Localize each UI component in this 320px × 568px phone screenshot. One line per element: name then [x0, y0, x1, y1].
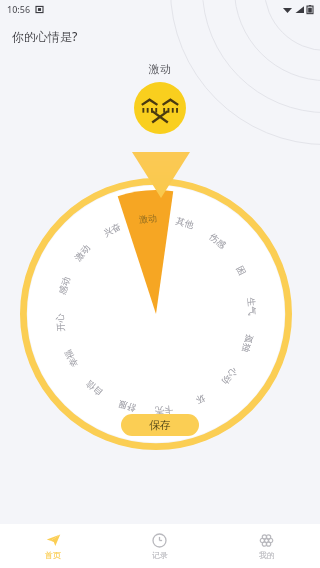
staticText: 坏 — [194, 392, 207, 406]
staticText: 激动 — [139, 212, 157, 225]
staticText: 你的心情是? — [12, 28, 78, 44]
button[interactable]: 心动 — [220, 366, 240, 387]
staticText: 困 — [234, 264, 248, 277]
staticText: 我的 — [259, 550, 275, 560]
button[interactable]: 记录 — [106, 524, 213, 568]
button[interactable]: 兴奋 — [101, 220, 122, 239]
button[interactable]: 感动 — [56, 275, 72, 296]
button[interactable]: 激动 — [139, 212, 157, 225]
staticText: 10:56 — [7, 3, 31, 15]
staticText: 生气 — [246, 297, 258, 316]
button[interactable]: 孤独 — [240, 333, 256, 354]
button[interactable]: 首页 — [0, 524, 106, 568]
staticText: 伤感 — [208, 230, 228, 250]
staticText: 其他 — [175, 214, 195, 230]
button[interactable]: 困 — [234, 264, 248, 277]
button[interactable]: 伤感 — [208, 230, 228, 250]
button[interactable]: 生气 — [246, 297, 258, 316]
button[interactable]: 激动 — [72, 242, 92, 263]
button[interactable]: 其他 — [175, 214, 195, 230]
staticText: 感动 — [56, 275, 72, 296]
button[interactable]: 自信 — [84, 378, 104, 398]
staticText: 自信 — [84, 378, 104, 398]
staticText: 激动 — [149, 62, 171, 76]
staticText: 首页 — [45, 550, 61, 560]
staticText: 幸福 — [62, 348, 80, 369]
button[interactable]: 坏 — [194, 392, 207, 406]
button[interactable]: 舒服 — [117, 398, 137, 414]
staticText: 开心 — [54, 313, 66, 332]
staticText: 兴奋 — [101, 220, 122, 239]
staticText: 卡壳 — [155, 404, 173, 417]
staticText: 激动 — [72, 242, 92, 263]
staticText: 保存 — [149, 418, 171, 432]
button[interactable]: 开心 — [54, 313, 66, 332]
button[interactable]: 幸福 — [62, 348, 80, 369]
button[interactable]: 卡壳 — [155, 404, 173, 417]
staticText: 舒服 — [117, 398, 137, 414]
staticText: 孤独 — [240, 333, 256, 354]
button[interactable]: 我的 — [213, 524, 320, 568]
button[interactable] — [20, 178, 292, 450]
staticText: 记录 — [152, 550, 168, 560]
staticText: 心动 — [220, 366, 240, 387]
button[interactable]: 保存 — [121, 414, 199, 436]
